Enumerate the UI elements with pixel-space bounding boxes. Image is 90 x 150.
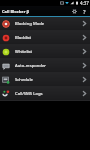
staticText: ? <box>83 8 86 15</box>
staticText: Whitelist <box>15 49 33 55</box>
button[interactable]: Schedule <box>0 73 90 86</box>
button[interactable]: Call/SMS Logs <box>0 87 90 100</box>
button[interactable]: Auto-responder <box>0 59 90 72</box>
staticText: Call Blocker β <box>2 9 30 14</box>
staticText: Auto-responder <box>15 63 47 69</box>
button[interactable]: Blacklist <box>0 31 90 44</box>
staticText: 4:37 <box>80 0 89 6</box>
staticText: Schedule <box>15 77 33 83</box>
staticText: Blacklist <box>15 35 32 41</box>
staticText: Call/SMS Logs <box>15 91 43 97</box>
button[interactable]: Blocking Mode <box>0 17 90 30</box>
button[interactable]: Settings <box>69 6 79 16</box>
button[interactable]: Help <box>79 6 89 16</box>
staticText: Blocking Mode <box>15 21 45 27</box>
button[interactable]: Whitelist <box>0 45 90 58</box>
